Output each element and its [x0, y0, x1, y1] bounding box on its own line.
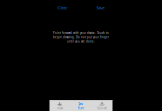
staticText: Upload: [97, 106, 107, 110]
staticText: Share: [77, 106, 84, 110]
staticText: begin drawing. Do not put your finger: [53, 35, 109, 39]
staticText: until you are done.: [67, 40, 95, 43]
staticText: Clear: [57, 5, 67, 10]
button[interactable]: Draw: [49, 100, 70, 111]
button[interactable]: Share: [70, 100, 91, 111]
staticText: Point forward with your device. Touch to: [53, 31, 109, 35]
staticText: Save: [96, 5, 104, 10]
button[interactable]: Upload: [91, 100, 112, 111]
staticText: Draw: [57, 106, 63, 110]
button[interactable]: Clear: [57, 5, 67, 10]
button[interactable]: Save: [96, 5, 104, 10]
